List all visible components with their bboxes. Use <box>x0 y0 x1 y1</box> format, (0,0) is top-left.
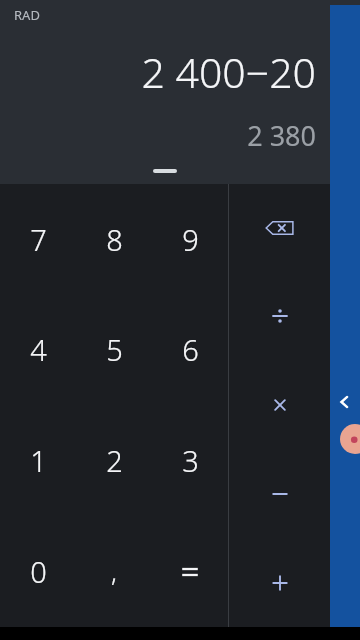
staticText: 9 <box>182 220 199 259</box>
staticText: 5 <box>106 330 123 369</box>
staticText: 8 <box>106 220 123 259</box>
other: Plus <box>268 571 292 595</box>
staticText: , <box>111 554 117 589</box>
staticText: 6 <box>182 330 199 369</box>
button[interactable]: 3 <box>152 405 228 516</box>
button[interactable]: RAD <box>14 6 40 24</box>
button[interactable]: Multiply <box>229 360 330 449</box>
staticText: 4 <box>30 330 47 369</box>
button[interactable]: More options <box>330 2 354 26</box>
button[interactable]: Equals <box>152 516 228 627</box>
staticText: 0 <box>30 552 47 591</box>
button[interactable]: 0 <box>0 516 76 627</box>
staticText: 2 380 <box>0 117 316 154</box>
other: Minus <box>268 482 292 506</box>
other: Divide <box>268 304 292 328</box>
button[interactable]: 8 <box>76 184 152 294</box>
button[interactable]: Divide <box>229 272 330 360</box>
button[interactable]: Plus <box>229 538 330 627</box>
button[interactable]: 9 <box>152 184 228 294</box>
button[interactable]: 7 <box>0 184 76 294</box>
button[interactable]: 4 <box>0 294 76 405</box>
staticText: 3 <box>182 441 199 480</box>
button[interactable]: 5 <box>76 294 152 405</box>
staticText: RAD <box>14 6 40 24</box>
button[interactable]: Backspace <box>229 184 330 272</box>
staticText: 2 400−20 <box>0 44 316 100</box>
staticText: 2 <box>106 441 123 480</box>
button[interactable]: , <box>76 516 152 627</box>
button[interactable]: 1 <box>0 405 76 516</box>
button[interactable]: 6 <box>152 294 228 405</box>
staticText: 1 <box>30 441 47 480</box>
other: Backspace <box>265 213 295 243</box>
button[interactable]: 2 <box>76 405 152 516</box>
button[interactable]: Back <box>336 393 354 411</box>
other: Equals <box>177 559 203 585</box>
button[interactable]: Minus <box>229 449 330 538</box>
staticText: 7 <box>30 220 47 259</box>
other: Multiply <box>269 394 291 416</box>
